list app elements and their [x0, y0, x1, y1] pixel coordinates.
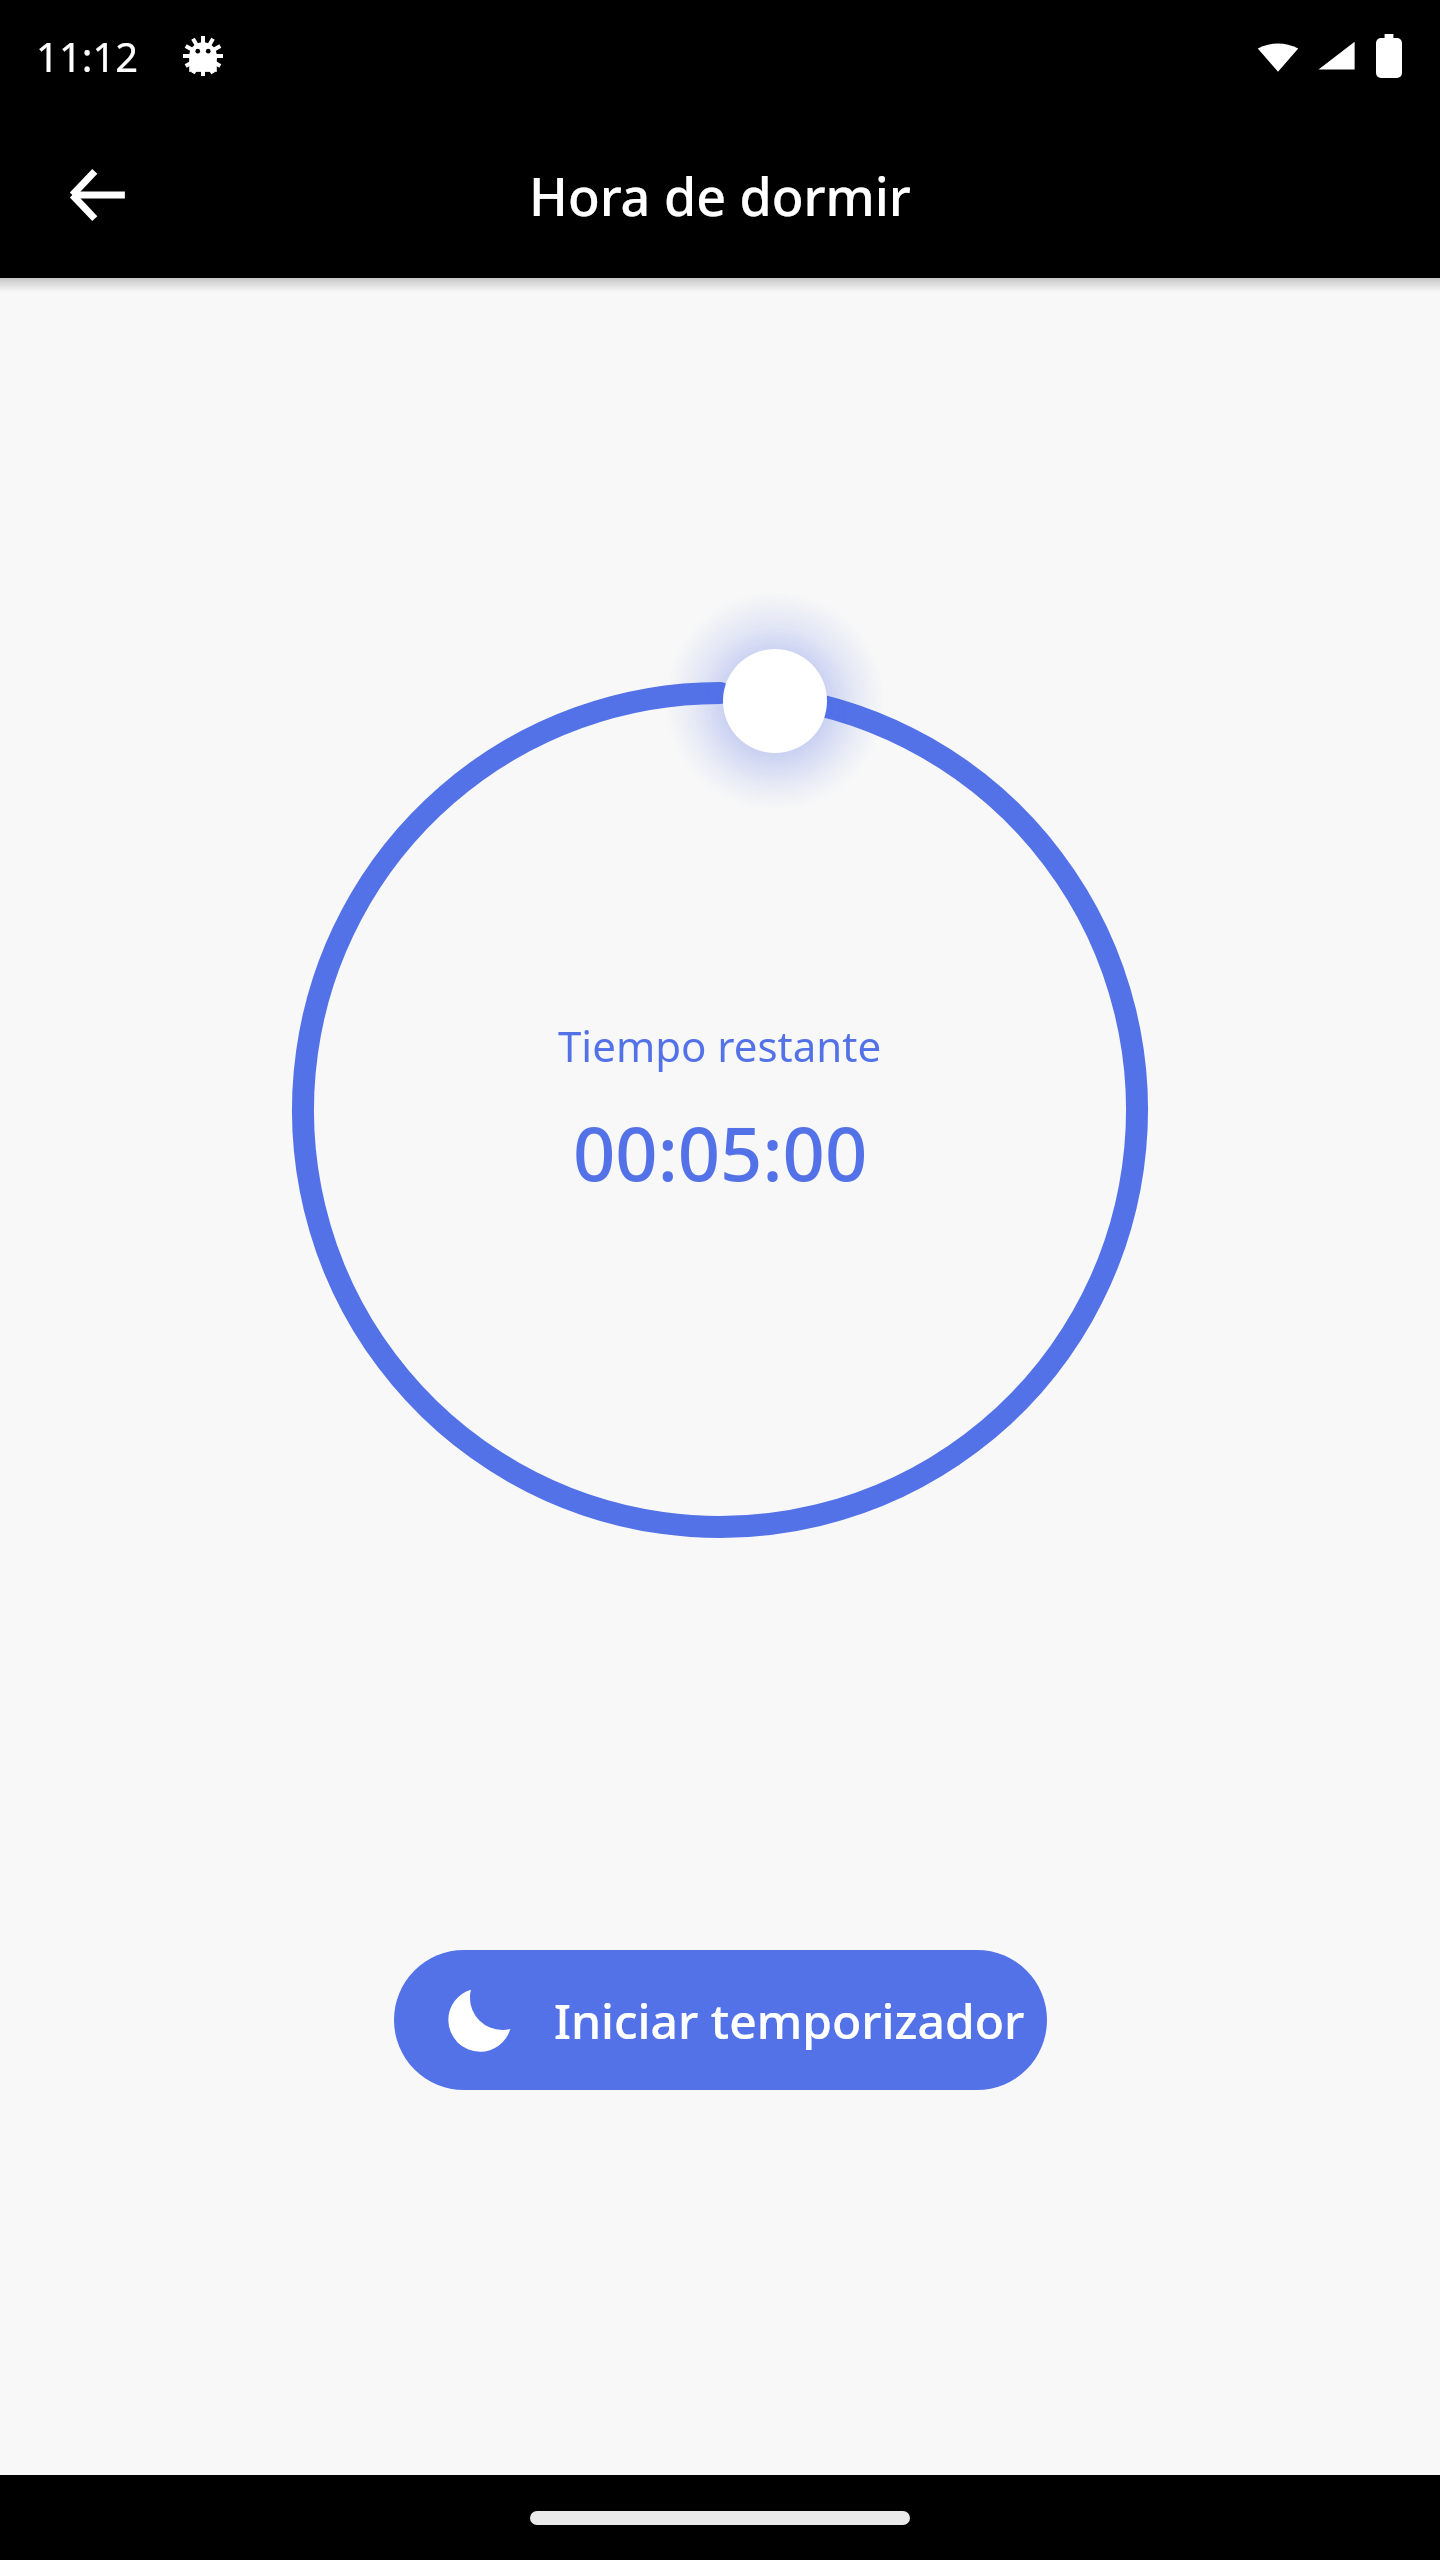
- staticText: 11:12: [36, 29, 139, 83]
- staticText: Tiempo restante: [558, 1017, 882, 1074]
- staticText: Hora de dormir: [529, 160, 911, 231]
- staticText: 00:05:00: [573, 1102, 868, 1203]
- button[interactable]: Back: [38, 135, 158, 255]
- staticText: Iniciar temporizador: [554, 1988, 1025, 2053]
- button[interactable]: Iniciar temporizador: [394, 1950, 1047, 2090]
